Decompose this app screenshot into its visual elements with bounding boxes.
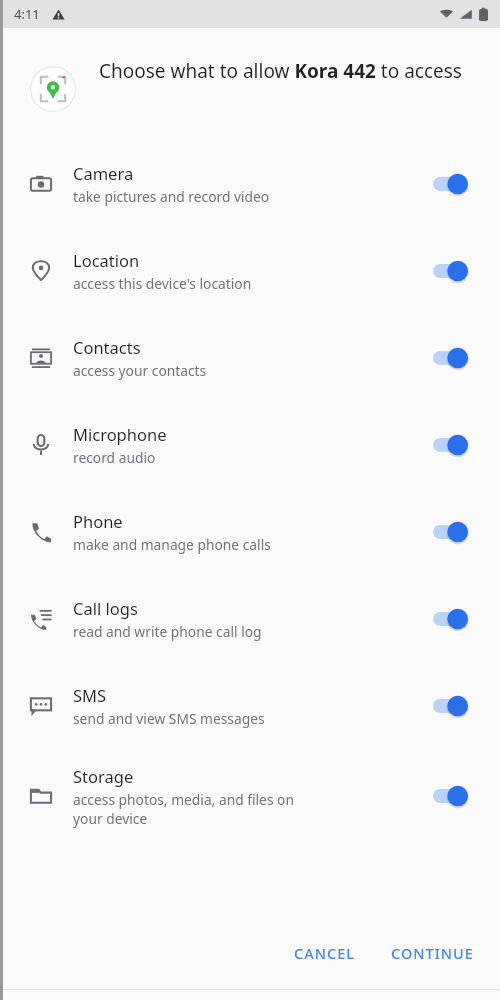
staticText: CONTINUE bbox=[391, 943, 474, 963]
button[interactable]: Microphone bbox=[0, 401, 500, 488]
button[interactable]: Call logs permission toggle bbox=[426, 599, 478, 639]
staticText: Camera bbox=[73, 162, 134, 184]
staticText: make and manage phone calls bbox=[73, 535, 271, 554]
staticText: Storage bbox=[73, 765, 134, 787]
button[interactable]: CANCEL bbox=[282, 933, 367, 973]
button[interactable]: Contacts permission toggle bbox=[426, 338, 478, 378]
button[interactable]: SMS bbox=[0, 662, 500, 749]
staticText: 4:11 bbox=[14, 5, 40, 23]
button[interactable]: Location permission toggle bbox=[426, 251, 478, 291]
staticText: Contacts bbox=[73, 336, 141, 358]
staticText: access your contacts bbox=[73, 361, 207, 380]
staticText: take pictures and record video bbox=[73, 187, 270, 206]
button[interactable]: Camera bbox=[0, 140, 500, 227]
button[interactable]: Call logs bbox=[0, 575, 500, 662]
staticText: SMS bbox=[73, 684, 107, 706]
staticText: record audio bbox=[73, 448, 156, 467]
staticText: CANCEL bbox=[294, 943, 355, 963]
staticText: Microphone bbox=[73, 423, 167, 445]
button[interactable]: Storage permission toggle bbox=[426, 776, 478, 816]
staticText: read and write phone call log bbox=[73, 622, 262, 641]
staticText: Call logs bbox=[73, 597, 138, 619]
button[interactable]: CONTINUE bbox=[379, 933, 486, 973]
staticText: Location bbox=[73, 249, 140, 271]
button[interactable]: Storage bbox=[0, 749, 500, 843]
button[interactable]: Contacts bbox=[0, 314, 500, 401]
button[interactable]: Phone permission toggle bbox=[426, 512, 478, 552]
button[interactable]: Phone bbox=[0, 488, 500, 575]
staticText: access photos, media, and files on your … bbox=[73, 790, 294, 828]
button[interactable]: Microphone permission toggle bbox=[426, 425, 478, 465]
button[interactable]: SMS permission toggle bbox=[426, 686, 478, 726]
staticText: Choose what to allow Kora 442 to access bbox=[99, 58, 462, 84]
staticText: send and view SMS messages bbox=[73, 709, 265, 728]
staticText: access this device's location bbox=[73, 274, 252, 293]
button[interactable]: Camera permission toggle bbox=[426, 164, 478, 204]
button[interactable]: Location bbox=[0, 227, 500, 314]
staticText: Phone bbox=[73, 510, 123, 532]
